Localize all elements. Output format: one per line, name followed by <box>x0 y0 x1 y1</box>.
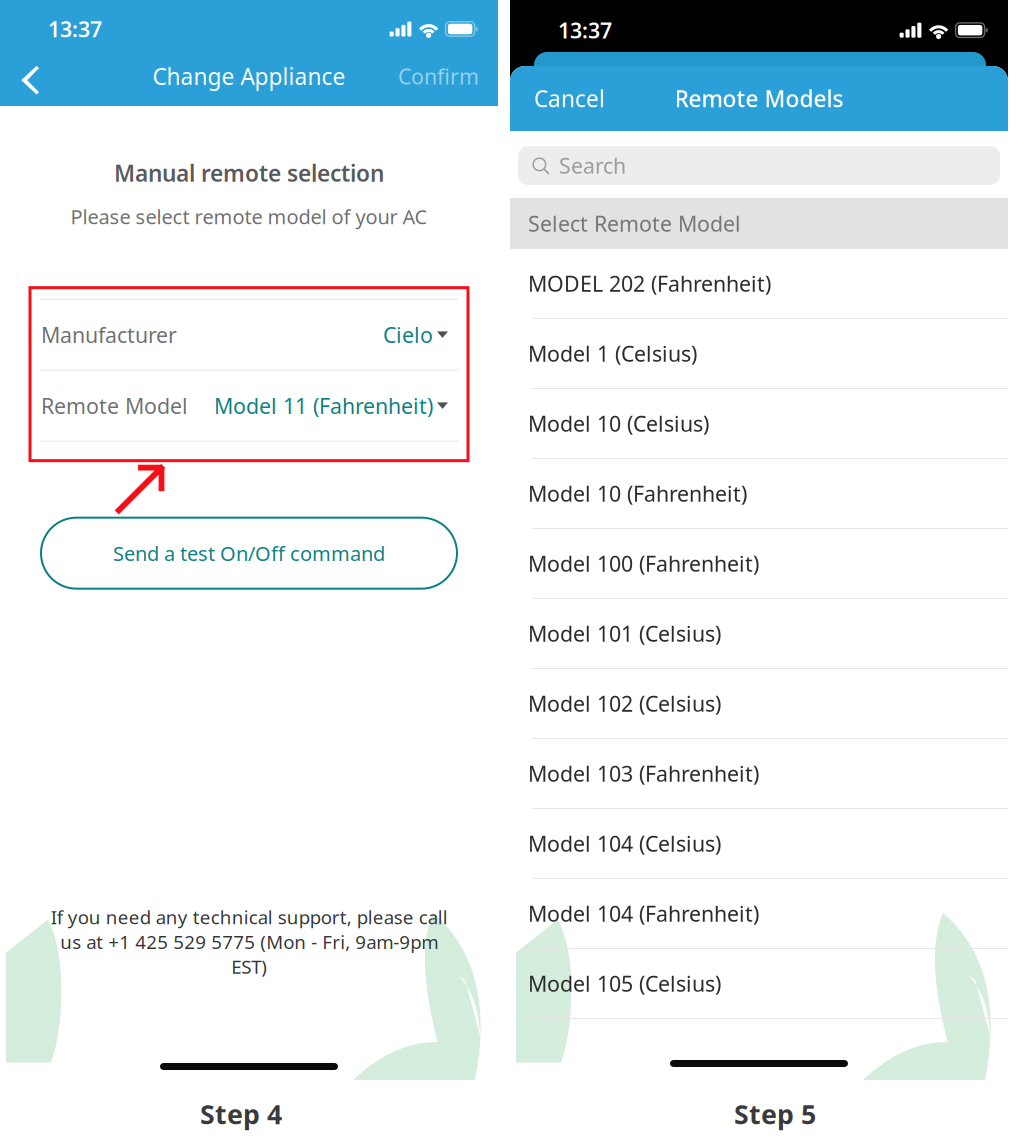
staticText: Model 105 (Celsius) <box>528 969 721 998</box>
staticText: Step 5 <box>734 1096 816 1132</box>
staticText: MODEL 202 (Fahrenheit) <box>528 269 771 298</box>
staticText: Remote Model <box>41 391 188 420</box>
staticText: 13:37 <box>48 15 102 43</box>
staticText: Model 11 (Fahrenheit) <box>214 391 433 420</box>
staticText: Confirm <box>398 62 479 90</box>
staticText: Please select remote model of your AC <box>70 203 427 230</box>
staticText: 13:37 <box>558 16 612 44</box>
staticText: Model 10 (Celsius) <box>528 409 709 438</box>
button[interactable]: Model 102 (Celsius) <box>510 669 1008 739</box>
staticText: Change Appliance <box>152 61 345 91</box>
button[interactable]: Back <box>0 51 64 101</box>
button[interactable]: Model 104 (Celsius) <box>510 809 1008 879</box>
button[interactable]: Model 105 (Celsius) <box>510 949 1008 1019</box>
staticText: Search <box>559 151 626 180</box>
button[interactable]: Send a test On/Off command <box>41 518 457 589</box>
staticText: Manual remote selection <box>114 158 384 188</box>
button[interactable]: Model 100 (Fahrenheit) <box>510 529 1008 599</box>
button[interactable]: Remote Model <box>30 371 468 441</box>
button[interactable]: Model 104 (Fahrenheit) <box>510 879 1008 949</box>
staticText: Cielo <box>383 320 433 349</box>
staticText: Remote Models <box>674 83 843 113</box>
staticText: Step 4 <box>200 1096 282 1132</box>
staticText: Model 104 (Celsius) <box>528 829 721 858</box>
staticText: If you need any technical support, pleas… <box>50 905 447 979</box>
button[interactable]: Manufacturer <box>30 300 468 370</box>
button[interactable]: Model 103 (Fahrenheit) <box>510 739 1008 809</box>
button[interactable]: Model 101 (Celsius) <box>510 599 1008 669</box>
button[interactable]: Confirm <box>388 51 498 101</box>
button[interactable]: Model 10 (Fahrenheit) <box>510 459 1008 529</box>
staticText: Model 100 (Fahrenheit) <box>528 549 759 578</box>
staticText: Model 103 (Fahrenheit) <box>528 759 759 788</box>
button[interactable]: Model 10 (Celsius) <box>510 389 1008 459</box>
staticText: Model 104 (Fahrenheit) <box>528 899 759 928</box>
staticText: Model 102 (Celsius) <box>528 689 721 718</box>
button[interactable]: MODEL 202 (Fahrenheit) <box>510 249 1008 319</box>
staticText: Model 101 (Celsius) <box>528 619 721 648</box>
staticText: Select Remote Model <box>528 209 741 238</box>
button[interactable]: Cancel <box>510 66 640 131</box>
button[interactable]: Model 1 (Celsius) <box>510 319 1008 389</box>
staticText: Send a test On/Off command <box>113 540 385 566</box>
staticText: Cancel <box>534 83 605 113</box>
staticText: Manufacturer <box>41 320 177 349</box>
staticText: Model 10 (Fahrenheit) <box>528 479 747 508</box>
staticText: Model 1 (Celsius) <box>528 339 697 368</box>
